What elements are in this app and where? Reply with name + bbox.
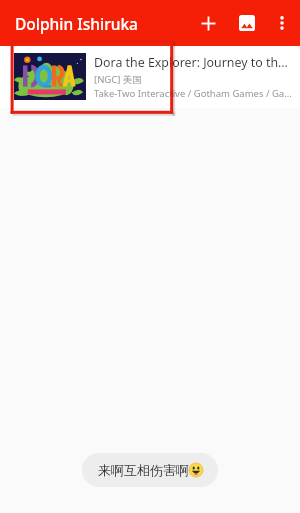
button[interactable]: Add [189,4,227,42]
button[interactable]: 来啊互相伤害啊 [82,453,218,487]
button[interactable]: Pictures [228,4,266,42]
staticText: [NGC] 美国 [94,73,142,86]
button[interactable]: Dora the Explorer: Journey to th… [0,46,300,108]
staticText: Dolphin Ishiruka [15,13,138,34]
staticText: 来啊互相伤害啊 [98,462,189,478]
staticText: Dora the Explorer: Journey to th… [94,54,288,71]
staticText: Take-Two Interactive / Gotham Games / Ga… [94,87,292,100]
button[interactable]: More options [263,4,300,42]
